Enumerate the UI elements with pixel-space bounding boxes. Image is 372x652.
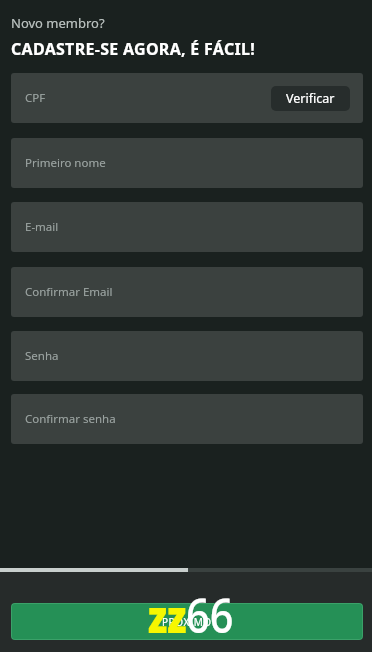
staticText: zz	[148, 586, 187, 645]
staticText: Senha	[25, 348, 59, 364]
staticText: Confirmar senha	[25, 411, 116, 427]
staticText: CPF	[25, 90, 46, 106]
staticText: CADASTRE-SE AGORA, É FÁCIL!	[11, 38, 256, 60]
button[interactable]: PROXIMO	[12, 604, 362, 639]
button[interactable]: Verificar	[271, 86, 350, 111]
staticText: E-mail	[25, 219, 59, 235]
button[interactable]: Senha	[11, 331, 363, 381]
staticText: Verificar	[286, 90, 335, 107]
staticText: PROXIMO	[162, 615, 212, 629]
button[interactable]: CPF	[11, 73, 363, 123]
staticText: Primeiro nome	[25, 155, 106, 171]
staticText: 66	[186, 582, 234, 647]
button[interactable]: Confirmar senha	[11, 394, 363, 444]
button[interactable]: Primeiro nome	[11, 138, 363, 188]
button[interactable]: Confirmar Email	[11, 267, 363, 317]
staticText: Novo membro?	[11, 14, 105, 32]
staticText: Confirmar Email	[25, 284, 113, 300]
button[interactable]: E-mail	[11, 202, 363, 252]
